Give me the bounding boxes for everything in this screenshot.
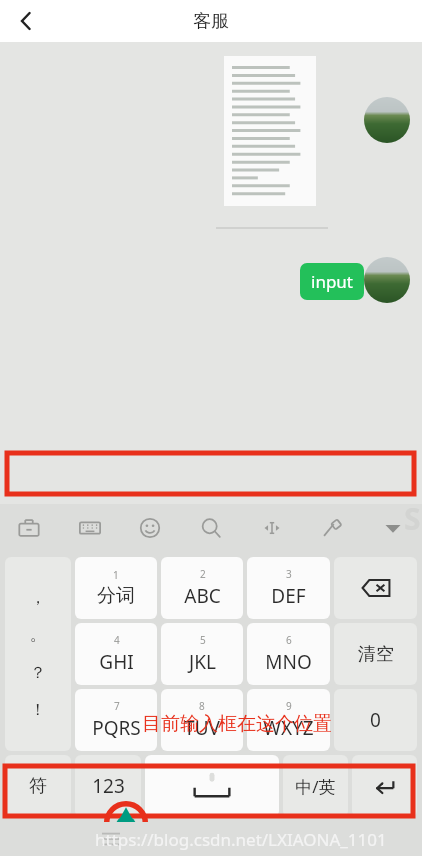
staticText: 123 [92,773,125,799]
button[interactable]: Back [6,1,46,41]
button[interactable]: 符 [5,755,71,817]
staticText: ？ [30,663,46,683]
staticText: PQRS [92,715,141,741]
button[interactable]: 123 [75,755,141,817]
staticText: 中/英 [295,775,336,798]
button[interactable]: 1 [75,557,157,619]
button[interactable]: Avatar [364,257,410,303]
staticText: input [311,270,353,293]
staticText: JKL [189,649,216,675]
staticText: 4 [114,633,120,647]
staticText: TUV [184,715,220,741]
button[interactable]: Space [145,755,279,817]
staticText: 9 [286,699,292,713]
button[interactable]: 9 [247,689,330,751]
button[interactable]: input [300,263,364,300]
staticText: 客服 [193,10,229,33]
staticText: 。 [30,625,46,645]
staticText: ABC [184,583,221,609]
button[interactable]: ， [5,557,71,751]
staticText: 3 [286,567,292,581]
staticText: ， [30,588,46,608]
button[interactable]: Input field [7,453,414,494]
button[interactable]: Enter [352,755,417,817]
staticText: 6 [286,633,292,647]
staticText: GHI [99,649,134,675]
button[interactable]: 5 [161,623,243,685]
staticText: 1 [113,568,119,582]
button[interactable]: Theme [315,511,349,545]
button[interactable]: Keyboard [73,511,107,545]
staticText: WXYZ [263,715,314,741]
button[interactable]: 7 [75,689,157,751]
button[interactable]: 清空 [334,623,417,685]
button[interactable]: Emoji [133,511,167,545]
button[interactable]: 0 [334,689,417,751]
button[interactable]: Avatar [364,97,410,143]
staticText: 5 [200,633,206,647]
button[interactable]: Menu [96,824,126,854]
staticText: 目前输入框在这个位置 [142,712,332,736]
button[interactable]: 中/英 [283,755,348,817]
staticText: 7 [114,699,120,713]
staticText: 清空 [358,643,394,666]
staticText: https://blog.csdn.net/LXIAONA_1101 [95,828,387,851]
button[interactable]: Toolbox [12,511,46,545]
button[interactable]: 4 [75,623,157,685]
staticText: DEF [271,583,306,609]
staticText: 符 [29,775,47,798]
staticText: ！ [30,700,46,720]
button[interactable]: Image message [224,56,316,206]
staticText: 分词 [97,584,135,608]
staticText: MNO [265,649,312,675]
staticText: 2 [200,567,206,581]
button[interactable]: Search [194,511,228,545]
button[interactable]: Move cursor [255,511,289,545]
button[interactable]: 2 [161,557,243,619]
staticText: 8 [199,699,205,713]
button[interactable]: 6 [247,623,330,685]
staticText: S [404,498,421,539]
button[interactable]: Collapse keyboard [376,511,410,545]
staticText: 0 [370,707,381,733]
button[interactable]: Backspace [334,557,417,619]
button[interactable]: 3 [247,557,330,619]
button[interactable]: 8 [161,689,243,751]
